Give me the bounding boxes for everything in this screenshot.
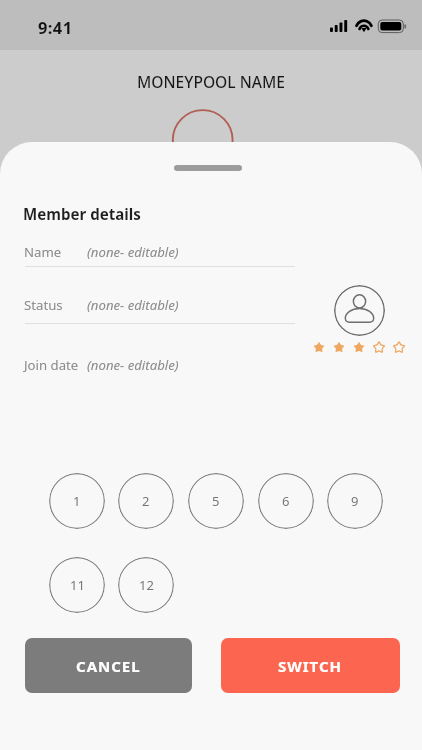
button[interactable]: SWITCH	[221, 638, 400, 693]
button[interactable]: Rate 2 stars	[330, 338, 348, 356]
button[interactable]: 6	[258, 473, 314, 529]
button[interactable]: 5	[188, 473, 244, 529]
staticText: 2	[142, 492, 150, 510]
staticText: SWITCH	[278, 656, 343, 676]
staticText: Member details	[23, 204, 141, 225]
button[interactable]: CANCEL	[25, 638, 192, 693]
other: Battery	[377, 19, 408, 34]
staticText: 11	[70, 576, 85, 594]
staticText: 12	[139, 576, 154, 594]
button[interactable]: Rate 5 stars	[390, 338, 408, 356]
staticText: Status	[24, 296, 63, 314]
staticText: (none- editable)	[87, 296, 179, 314]
staticText: 9	[351, 492, 359, 510]
button[interactable]: Rate 3 stars	[350, 338, 368, 356]
button[interactable]: Member avatar	[334, 285, 385, 336]
staticText: MONEYPOOL NAME	[0, 71, 422, 92]
button[interactable]: Rate 1 stars	[310, 338, 328, 356]
button[interactable]: 11	[49, 557, 105, 613]
button[interactable]: 9	[327, 473, 383, 529]
other: Wi-Fi	[355, 19, 373, 33]
staticText: (none- editable)	[87, 356, 179, 374]
staticText: (none- editable)	[87, 243, 179, 261]
staticText: Name	[24, 243, 62, 261]
button[interactable]: 2	[118, 473, 174, 529]
staticText: Join date	[24, 356, 79, 374]
other: Cellular signal	[330, 20, 350, 32]
staticText: 9:41	[38, 16, 73, 38]
staticText: 5	[212, 492, 220, 510]
staticText: 1	[73, 492, 81, 510]
button[interactable]: 1	[49, 473, 105, 529]
button[interactable]: Rate 4 stars	[370, 338, 388, 356]
staticText: CANCEL	[76, 656, 141, 676]
staticText: 6	[282, 492, 290, 510]
button[interactable]: 12	[118, 557, 174, 613]
